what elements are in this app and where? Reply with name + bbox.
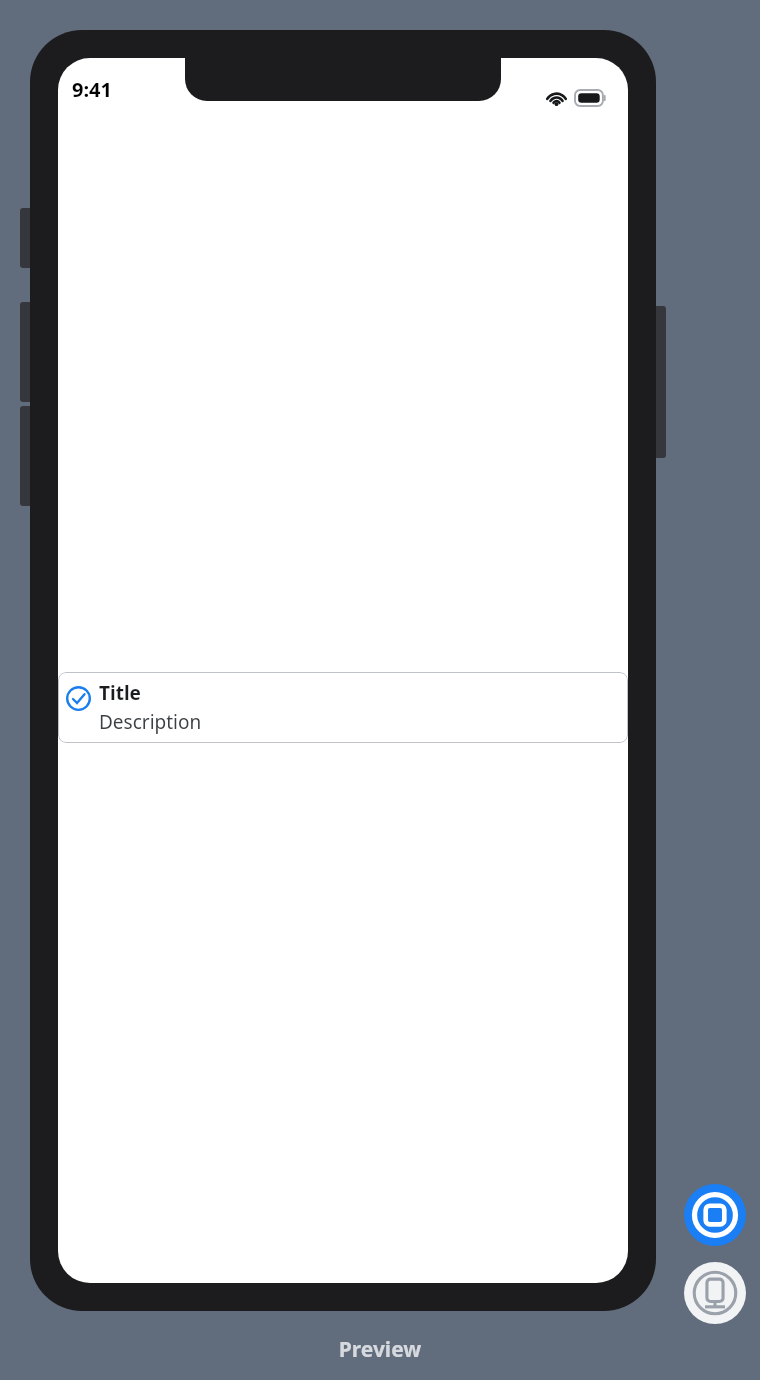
staticText: 9:41: [72, 76, 112, 103]
staticText: Description: [99, 709, 202, 735]
staticText: Title: [99, 680, 141, 706]
button[interactable]: Title: [58, 672, 628, 743]
button[interactable]: Device frame: [684, 1262, 746, 1324]
staticText: Preview: [0, 1335, 760, 1364]
button[interactable]: Interactive mode: [684, 1184, 746, 1246]
